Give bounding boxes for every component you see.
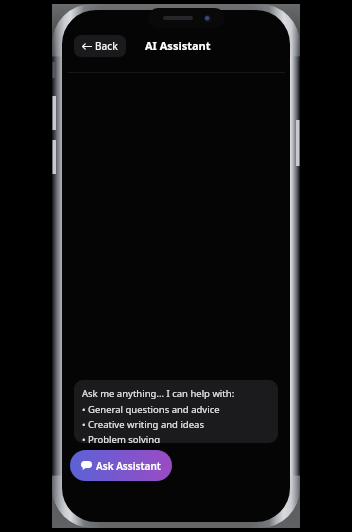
staticText: • Problem solving <box>82 433 161 443</box>
staticText: AI Assistant <box>145 38 211 53</box>
staticText: Ask me anything... I can help with: <box>82 387 235 400</box>
button[interactable]: Ask Assistant <box>70 450 172 481</box>
button[interactable]: Ask me anything... I can help with: <box>74 380 278 443</box>
staticText: • Creative writing and ideas <box>82 418 204 431</box>
staticText: Ask Assistant <box>96 459 161 473</box>
staticText: Back <box>95 39 118 53</box>
button[interactable]: Back <box>74 35 126 57</box>
staticText: • General questions and advice <box>82 403 220 416</box>
